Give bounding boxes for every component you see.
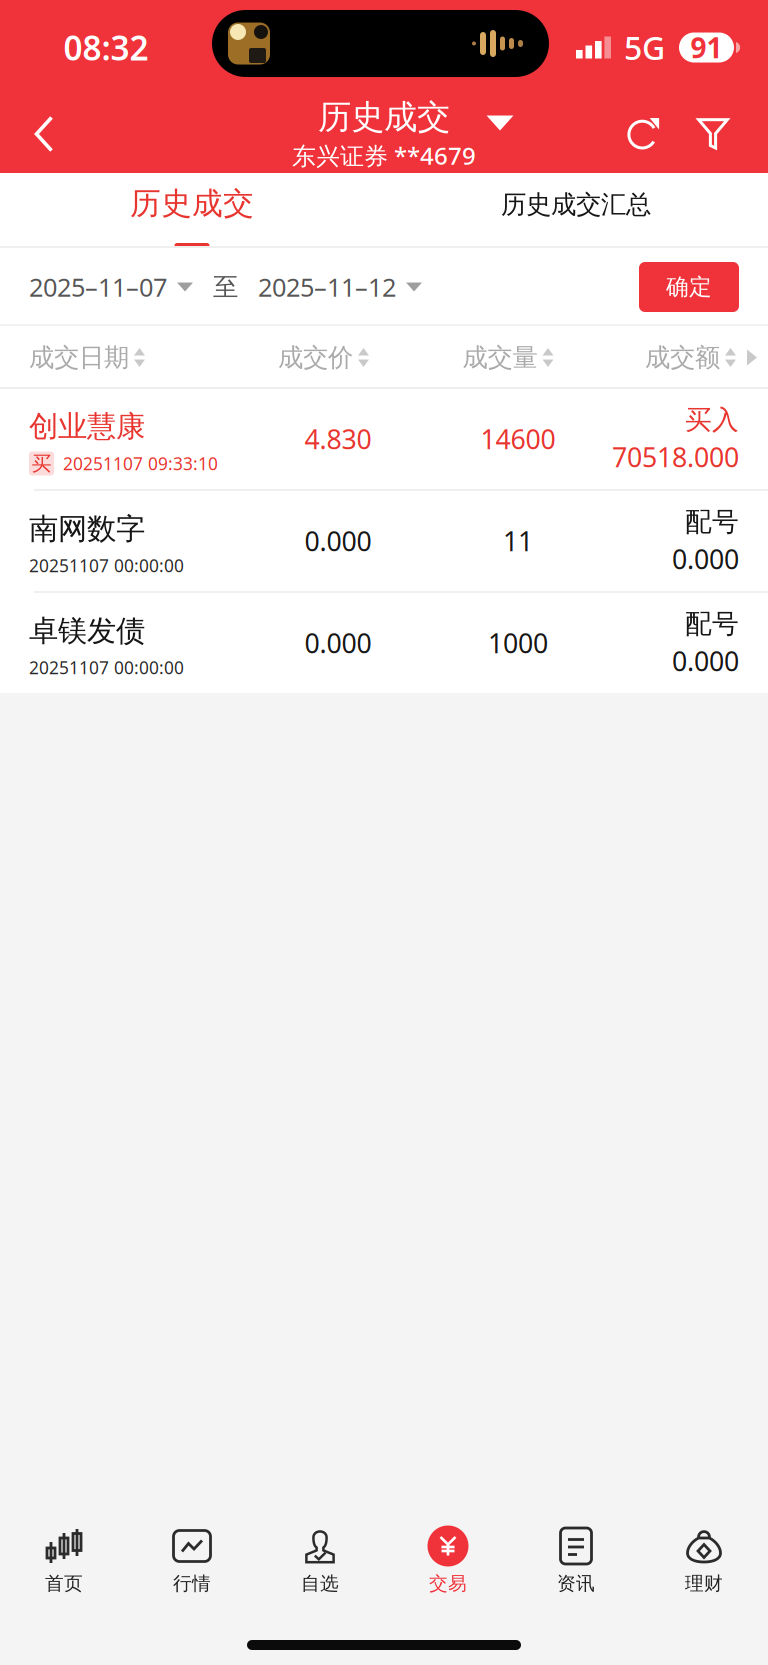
button[interactable]: Refresh: [608, 95, 680, 173]
staticText: 91: [690, 29, 722, 66]
staticText: 4.830: [304, 421, 371, 457]
staticText: 买入: [685, 403, 739, 436]
button[interactable]: 历史成交: [0, 173, 384, 246]
staticText: 70518.000: [612, 439, 739, 475]
staticText: 0.000: [304, 523, 371, 559]
staticText: 创业慧康: [29, 408, 145, 444]
staticText: 南网数字: [29, 511, 145, 547]
staticText: 成交价: [278, 342, 353, 373]
staticText: 自选: [301, 1572, 339, 1595]
button[interactable]: 历史成交汇总: [384, 168, 768, 251]
button[interactable]: Switch account: [472, 98, 528, 148]
button[interactable]: 2025–11–07: [29, 248, 193, 326]
staticText: 历史成交: [130, 185, 254, 222]
staticText: 资讯: [557, 1572, 595, 1595]
staticText: 成交量: [462, 342, 537, 373]
staticText: 14600: [480, 421, 555, 457]
staticText: 历史成交: [318, 97, 450, 137]
button[interactable]: Back: [0, 95, 88, 173]
staticText: 东兴证券 **4679: [292, 139, 476, 171]
staticText: 0.000: [304, 625, 371, 661]
staticText: 成交额: [645, 342, 720, 373]
staticText: 买: [31, 451, 51, 476]
staticText: 2025–11–07: [29, 270, 167, 304]
button[interactable]: 南网数字: [0, 491, 768, 591]
button[interactable]: 确定: [639, 262, 739, 312]
button[interactable]: 资讯: [512, 1518, 640, 1616]
button[interactable]: 成交额: [610, 326, 768, 389]
staticText: 5G: [624, 26, 665, 69]
button[interactable]: Filter: [680, 95, 746, 173]
staticText: 配号: [685, 505, 739, 538]
button[interactable]: 交易: [384, 1518, 512, 1616]
staticText: 首页: [45, 1572, 83, 1595]
staticText: 历史成交汇总: [501, 189, 651, 220]
staticText: 20251107 00:00:00: [29, 656, 184, 679]
button[interactable]: 理财: [640, 1518, 768, 1616]
staticText: 1000: [488, 625, 548, 661]
staticText: 成交日期: [29, 342, 129, 373]
staticText: 确定: [666, 273, 712, 301]
button[interactable]: 行情: [128, 1518, 256, 1616]
staticText: 理财: [685, 1572, 723, 1595]
staticText: 配号: [685, 607, 739, 640]
staticText: 20251107 00:00:00: [29, 554, 184, 577]
button[interactable]: 2025–11–12: [258, 248, 422, 326]
staticText: 行情: [173, 1572, 211, 1595]
staticText: 至: [213, 271, 238, 302]
staticText: 卓镁发债: [29, 613, 145, 649]
button[interactable]: 卓镁发债: [0, 593, 768, 693]
staticText: 0.000: [672, 643, 739, 679]
staticText: 20251107 09:33:10: [63, 452, 218, 475]
staticText: 08:32: [63, 25, 148, 70]
button[interactable]: 成交日期: [0, 326, 241, 389]
staticText: 2025–11–12: [258, 270, 396, 304]
button[interactable]: 成交量: [406, 326, 610, 389]
button[interactable]: 首页: [0, 1518, 128, 1616]
staticText: 11: [503, 523, 533, 559]
button[interactable]: 创业慧康: [0, 389, 768, 489]
button[interactable]: 成交价: [241, 326, 406, 389]
staticText: 交易: [429, 1572, 467, 1595]
staticText: 0.000: [672, 541, 739, 577]
button[interactable]: 自选: [256, 1518, 384, 1616]
